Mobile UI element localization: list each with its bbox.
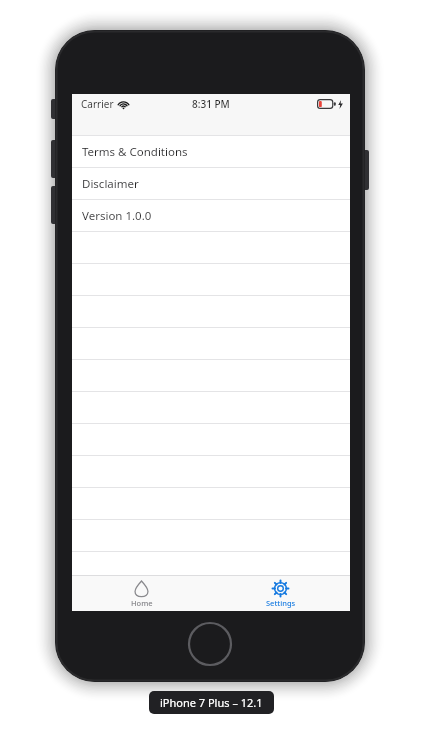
staticText: Carrier [81, 97, 114, 111]
button[interactable]: Terms & Conditions [72, 136, 350, 167]
button[interactable]: Home [72, 576, 211, 611]
staticText: Settings [266, 598, 296, 608]
staticText: Home [131, 598, 153, 608]
staticText: Terms & Conditions [82, 144, 188, 160]
staticText: 8:31 PM [192, 97, 230, 111]
staticText: Version 1.0.0 [82, 208, 152, 224]
staticText: Disclaimer [82, 176, 139, 192]
button[interactable]: Version 1.0.0 [72, 200, 350, 231]
button[interactable]: Disclaimer [72, 168, 350, 199]
staticText: iPhone 7 Plus – 12.1 [160, 695, 263, 710]
other: Home button [187, 621, 233, 667]
button[interactable]: Settings [211, 576, 350, 611]
